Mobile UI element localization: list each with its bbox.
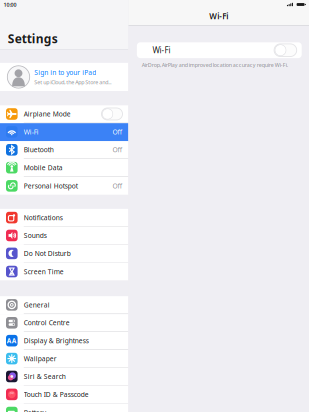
staticText: Screen Time <box>24 267 64 276</box>
staticText: Sounds <box>24 231 47 240</box>
button[interactable]: Bluetooth <box>0 141 128 159</box>
button[interactable]: Touch ID & Passcode <box>0 386 128 404</box>
staticText: Mobile Data <box>24 163 63 172</box>
button[interactable]: Wi-Fi <box>0 123 128 141</box>
button[interactable]: Wi-Fi <box>137 42 302 58</box>
button[interactable]: Do Not Disturb <box>0 245 128 263</box>
button[interactable]: Screen Time <box>0 263 128 280</box>
staticText: Off <box>112 181 122 190</box>
staticText: Do Not Disturb <box>24 249 71 258</box>
staticText: AirDrop, AirPlay and improved location a… <box>142 61 288 68</box>
button[interactable]: Wallpaper <box>0 350 128 368</box>
staticText: General <box>24 300 50 309</box>
button[interactable]: Sign in to your iPad <box>0 63 128 91</box>
button[interactable]: Siri & Search <box>0 368 128 386</box>
button[interactable]: Sounds <box>0 227 128 245</box>
button[interactable]: AA <box>0 332 128 350</box>
staticText: AA <box>7 336 17 345</box>
button[interactable]: General <box>0 296 128 314</box>
staticText: 10:00 <box>3 1 16 8</box>
staticText: Sign in to your iPad <box>34 68 96 77</box>
staticText: Wi-Fi <box>24 127 39 136</box>
button[interactable]: Battery <box>0 404 128 412</box>
staticText: Off <box>112 127 122 136</box>
staticText: Set up iCloud, the App Store and... <box>34 79 111 86</box>
staticText: Display & Brightness <box>24 336 89 345</box>
staticText: Bluetooth <box>24 145 54 154</box>
staticText: Wi-Fi <box>209 11 228 21</box>
staticText: Control Centre <box>24 318 70 327</box>
staticText: Airplane Mode <box>24 109 71 118</box>
staticText: Battery <box>24 408 46 412</box>
staticText: Wi-Fi <box>152 45 170 55</box>
button[interactable]: Notifications <box>0 209 128 227</box>
staticText: Siri & Search <box>24 372 66 381</box>
staticText: Off <box>112 145 122 154</box>
button[interactable]: Personal Hotspot <box>0 177 128 195</box>
button[interactable]: Airplane Mode <box>0 105 128 123</box>
button[interactable]: Control Centre <box>0 314 128 332</box>
staticText: Notifications <box>24 213 63 222</box>
staticText: Settings <box>8 31 58 47</box>
button[interactable]: Mobile Data <box>0 159 128 177</box>
staticText: Wallpaper <box>24 354 57 363</box>
staticText: Touch ID & Passcode <box>24 390 89 399</box>
staticText: Personal Hotspot <box>24 181 78 190</box>
